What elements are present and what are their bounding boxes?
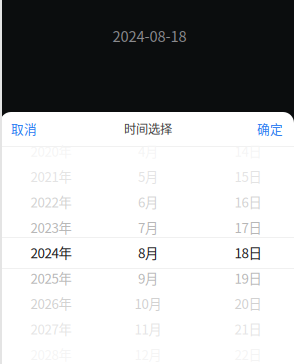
staticText: 14日 bbox=[234, 141, 261, 160]
staticText: 19日 bbox=[234, 268, 261, 287]
staticText: 取消 bbox=[11, 119, 37, 138]
staticText: 20日 bbox=[234, 294, 261, 313]
staticText: 6月 bbox=[138, 192, 158, 211]
staticText: 21日 bbox=[234, 319, 261, 338]
staticText: 7月 bbox=[138, 217, 158, 237]
staticText: 10月 bbox=[134, 294, 161, 313]
button[interactable]: 取消 bbox=[0, 0, 294, 364]
staticText: 确定 bbox=[257, 119, 283, 138]
staticText: 9月 bbox=[138, 268, 158, 287]
staticText: 2025年 bbox=[30, 268, 71, 287]
staticText: 12月 bbox=[134, 344, 161, 364]
staticText: 2026年 bbox=[30, 294, 71, 313]
staticText: 2024-08-18 bbox=[112, 25, 186, 46]
staticText: 2024年 bbox=[30, 243, 71, 262]
staticText: 时间选择 bbox=[124, 120, 172, 137]
staticText: 8月 bbox=[138, 243, 158, 262]
staticText: 4月 bbox=[138, 141, 158, 160]
staticText: 2022年 bbox=[30, 192, 71, 211]
staticText: 5月 bbox=[138, 167, 158, 186]
staticText: 11月 bbox=[134, 319, 161, 338]
staticText: 2027年 bbox=[30, 319, 71, 338]
staticText: 16日 bbox=[234, 192, 261, 211]
button[interactable]: 确定 bbox=[0, 0, 294, 364]
staticText: 2028年 bbox=[30, 344, 71, 364]
staticText: 22日 bbox=[234, 344, 261, 364]
staticText: 2023年 bbox=[30, 217, 71, 237]
staticText: 18日 bbox=[234, 243, 261, 262]
staticText: 17日 bbox=[234, 217, 261, 237]
staticText: 15日 bbox=[234, 167, 261, 186]
staticText: 2020年 bbox=[30, 141, 71, 160]
staticText: 2021年 bbox=[30, 167, 71, 186]
